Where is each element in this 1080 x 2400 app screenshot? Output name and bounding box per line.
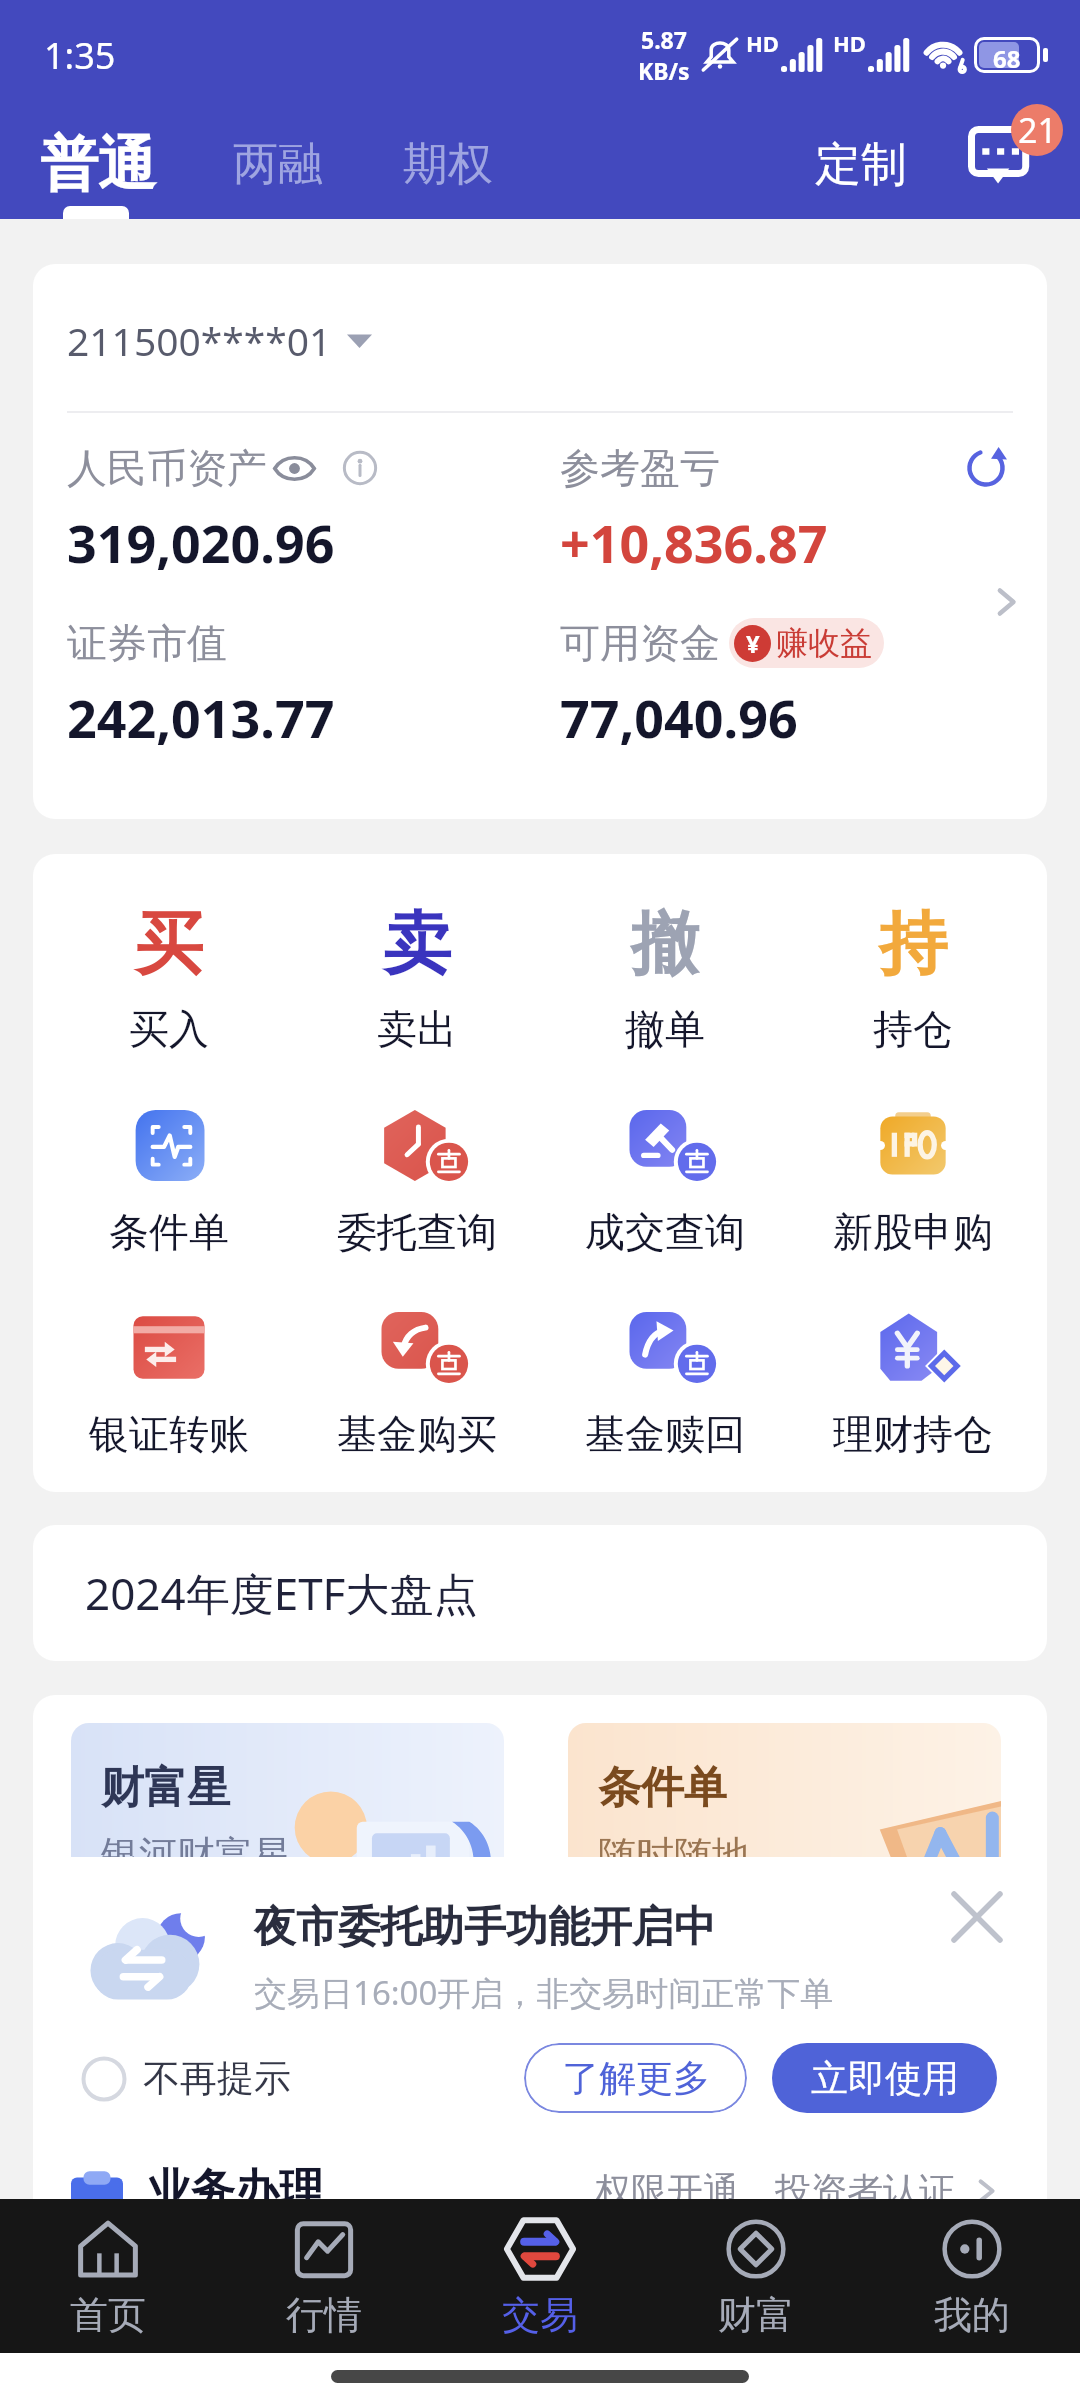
staticText: 首页 <box>70 2291 146 2339</box>
staticText: 条件单 <box>598 1761 727 1815</box>
staticText: 21 <box>1018 107 1057 153</box>
staticText: 我的 <box>934 2291 1010 2339</box>
staticText: 财富星 <box>101 1761 230 1815</box>
staticText: 赚收益 <box>776 623 872 663</box>
button[interactable]: 成交查询 <box>541 1110 789 1257</box>
button[interactable]: 立即使用 <box>772 2043 997 2113</box>
staticText: KB/s <box>638 55 690 86</box>
staticText: 条件单 <box>109 1207 229 1257</box>
button[interactable]: 条件单 <box>45 1110 293 1257</box>
staticText: 买 <box>135 902 203 988</box>
button[interactable]: 期权 <box>362 120 534 209</box>
button[interactable]: 买 <box>45 902 293 1054</box>
staticText: 期权 <box>403 136 493 193</box>
button[interactable]: 不再提示 <box>81 2055 291 2102</box>
button[interactable]: Messages <box>968 115 1070 215</box>
button[interactable]: 撤 <box>541 902 789 1054</box>
button[interactable]: 委托查询 <box>293 1110 541 1257</box>
staticText: 基金赎回 <box>585 1409 745 1459</box>
staticText: HD <box>833 28 866 58</box>
staticText: 持仓 <box>873 1004 953 1054</box>
button[interactable]: 两融 <box>194 120 362 209</box>
staticText: 卖出 <box>377 1004 457 1054</box>
button[interactable]: 我的 <box>864 2213 1080 2339</box>
button[interactable]: 基金购买 <box>293 1312 541 1459</box>
staticText: 银河财富星 <box>101 1831 291 1879</box>
staticText: 人民币资产 <box>67 443 267 493</box>
button[interactable]: 卖 <box>293 902 541 1054</box>
staticText: 了解更多 <box>562 2055 710 2102</box>
button[interactable]: 条件单 <box>568 1723 1001 1913</box>
staticText: 行情 <box>286 2291 362 2339</box>
staticText: 2024年度ETF大盘点 <box>85 1563 478 1623</box>
staticText: 可用资金 <box>560 618 720 668</box>
staticText: 定制 <box>815 136 907 194</box>
button[interactable]: 211500****01 <box>33 264 1047 819</box>
staticText: +10,836.87 <box>560 507 828 578</box>
staticText: 证券市值 <box>67 618 227 668</box>
staticText: 242,013.77 <box>67 682 335 753</box>
staticText: 319,020.96 <box>67 507 335 578</box>
staticText: 权限开通、投资者认证 <box>595 2168 955 2213</box>
staticText: 财富 <box>718 2291 794 2339</box>
button[interactable]: 财富 <box>648 2213 864 2339</box>
staticText: 普通 <box>40 128 156 201</box>
button[interactable]: 首页 <box>0 2213 216 2339</box>
staticText: 立即使用 <box>811 2055 959 2102</box>
staticText: 卖 <box>383 902 451 988</box>
staticText: 随时随地 <box>598 1831 750 1879</box>
staticText: HD <box>746 28 779 58</box>
staticText: 撤单 <box>625 1004 705 1054</box>
button[interactable]: 基金赎回 <box>541 1312 789 1459</box>
button[interactable]: 定制 <box>803 122 919 208</box>
button[interactable]: 2024年度ETF大盘点 <box>33 1525 1047 1661</box>
button[interactable]: 理财持仓 <box>789 1312 1037 1459</box>
staticText: 基金购买 <box>337 1409 497 1459</box>
staticText: 77,040.96 <box>560 682 798 753</box>
staticText: 两融 <box>233 136 323 193</box>
button[interactable]: 新股申购 <box>789 1110 1037 1257</box>
button[interactable]: 财富星 <box>71 1723 504 1913</box>
staticText: 夜市委托助手功能开启中 <box>254 1901 716 1954</box>
staticText: 交易日16:00开启，非交易时间正常下单 <box>254 1970 834 2015</box>
button[interactable]: 业务办理 <box>71 2163 1001 2218</box>
button[interactable]: 银证转账 <box>45 1312 293 1459</box>
button[interactable]: ¥ <box>734 623 872 663</box>
staticText: 银证转账 <box>89 1409 249 1459</box>
staticText: 68 <box>993 42 1021 68</box>
staticText: 211500****01 <box>67 314 332 367</box>
staticText: 委托查询 <box>337 1207 497 1257</box>
button[interactable]: 普通 <box>0 116 194 213</box>
staticText: 持 <box>879 902 947 988</box>
button[interactable]: 了解更多 <box>524 2043 747 2113</box>
staticText: 参考盈亏 <box>560 443 720 493</box>
staticText: 1:35 <box>44 31 116 80</box>
staticText: 交易 <box>502 2291 578 2339</box>
staticText: 业务办理 <box>147 2163 323 2218</box>
staticText: 买入 <box>129 1004 209 1054</box>
staticText: 撤 <box>631 902 699 988</box>
button[interactable]: 持 <box>789 902 1037 1054</box>
staticText: 5.87 <box>641 24 687 55</box>
staticText: 不再提示 <box>143 2055 291 2102</box>
staticText: 新股申购 <box>833 1207 993 1257</box>
staticText: 成交查询 <box>585 1207 745 1257</box>
staticText: ¥ <box>746 627 760 660</box>
button[interactable]: Close <box>939 1879 1015 1955</box>
staticText: 理财持仓 <box>833 1409 993 1459</box>
button[interactable]: 行情 <box>216 2213 432 2339</box>
button[interactable]: 交易 <box>432 2213 648 2339</box>
